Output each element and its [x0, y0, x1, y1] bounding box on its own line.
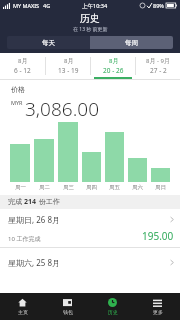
staticText: 钱包: [63, 309, 73, 315]
staticText: 27 - 2: [150, 66, 167, 75]
staticText: 13 - 19: [58, 66, 79, 75]
staticText: 周四: [86, 184, 97, 191]
button[interactable]: 8月: [0, 53, 45, 79]
staticText: 195.00: [142, 229, 174, 243]
button[interactable]: 每天: [7, 36, 90, 49]
staticText: 6 - 12: [14, 66, 31, 75]
staticText: 8月 - 9月: [146, 57, 170, 65]
staticText: 周五: [109, 184, 120, 191]
staticText: 完成: [8, 197, 24, 207]
staticText: MY MAXIS: [13, 2, 40, 9]
staticText: 在 13 秒 前更新: [73, 26, 108, 33]
staticText: 周日: [155, 184, 166, 191]
staticText: 3,086.00: [25, 96, 100, 122]
button[interactable]: 主页: [0, 293, 45, 320]
button[interactable]: 星期日, 26 8月: [0, 209, 180, 247]
staticText: 周二: [39, 184, 50, 191]
staticText: 10 工作完成: [8, 235, 41, 243]
other: 展开: [170, 259, 174, 266]
staticText: MYR: [11, 99, 23, 106]
staticText: 20 - 26: [103, 66, 124, 75]
staticText: 8月: [64, 57, 74, 65]
staticText: 历史: [108, 309, 118, 315]
staticText: 周六: [132, 184, 143, 191]
button[interactable]: 星期六, 25 8月: [0, 252, 180, 268]
staticText: 更多: [153, 309, 163, 315]
button[interactable]: 8月 - 9月: [136, 53, 180, 79]
staticText: 周一: [15, 184, 26, 191]
staticText: 8月: [109, 57, 119, 65]
staticText: 每天: [42, 39, 55, 47]
staticText: 价格: [11, 85, 25, 94]
button[interactable]: 钱包: [45, 293, 90, 320]
staticText: 星期日, 26 8月: [8, 214, 61, 225]
staticText: 上午10:34: [82, 2, 108, 10]
button[interactable]: 8月: [91, 53, 135, 79]
staticText: 89%: [153, 2, 164, 9]
button[interactable]: 历史: [90, 293, 135, 320]
staticText: 历史: [80, 12, 100, 25]
staticText: 4G: [43, 2, 51, 9]
staticText: 主页: [18, 309, 28, 315]
staticText: 214: [24, 197, 37, 207]
other: 展开: [170, 216, 174, 223]
button[interactable]: 8月: [46, 53, 90, 79]
button[interactable]: 每周: [90, 36, 173, 49]
staticText: 份工作: [37, 197, 60, 207]
button[interactable]: 更多: [135, 293, 180, 320]
staticText: 每周: [125, 39, 138, 47]
staticText: 星期六, 25 8月: [8, 257, 61, 268]
staticText: 周三: [63, 184, 74, 191]
staticText: 8月: [18, 57, 28, 65]
